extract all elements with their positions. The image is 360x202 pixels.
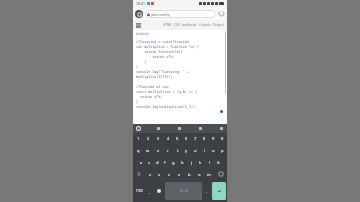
- button[interactable]: 9: [209, 133, 218, 144]
- button[interactable]: u: [191, 144, 200, 156]
- button[interactable]: 1: [133, 133, 143, 144]
- staticText: b: [188, 172, 191, 177]
- button[interactable]: Enter: [212, 182, 226, 200]
- staticText: ES - ES: [180, 189, 188, 193]
- button[interactable]: Space: [165, 182, 202, 200]
- staticText: 8: [203, 136, 206, 141]
- button[interactable]: g: [169, 156, 178, 168]
- button[interactable]: 0: [218, 133, 227, 144]
- button[interactable]: jsbin.com/q: [147, 10, 214, 18]
- button[interactable]: 7: [191, 133, 200, 144]
- staticText: Console: [199, 23, 211, 27]
- button[interactable]: Account: [135, 10, 143, 18]
- staticText: const multiplicar = (a,b) => {: [136, 89, 198, 94]
- button[interactable]: Console: [199, 23, 211, 27]
- button[interactable]: x: [154, 168, 164, 180]
- button[interactable]: .: [203, 180, 211, 202]
- staticText: ñ: [217, 160, 220, 165]
- button[interactable]: 8: [200, 133, 209, 144]
- button[interactable]: Emoji: [154, 180, 164, 202]
- staticText: o: [212, 148, 215, 153]
- staticText: }: [136, 59, 147, 64]
- button[interactable]: Output: [213, 23, 224, 27]
- staticText: y: [185, 148, 188, 153]
- staticText: d: [156, 160, 159, 165]
- button[interactable]: 4: [163, 133, 173, 144]
- button[interactable]: s: [145, 156, 153, 168]
- staticText: s: [148, 160, 150, 165]
- button[interactable]: k: [196, 156, 205, 168]
- button[interactable]: CSS: [174, 23, 180, 27]
- button[interactable]: Stickers: [156, 126, 161, 131]
- staticText: var multiplica = function (a) {: [136, 44, 200, 49]
- button[interactable]: ?123: [133, 180, 146, 202]
- staticText: JavaScript: [182, 23, 197, 27]
- staticText: 2: [147, 136, 150, 141]
- staticText: p: [221, 148, 224, 153]
- button[interactable]: Shift: [133, 168, 145, 180]
- staticText: Output: [213, 23, 224, 27]
- button[interactable]: q: [133, 144, 143, 156]
- staticText: JavaScript: [136, 32, 149, 36]
- staticText: 3: [157, 136, 160, 141]
- button[interactable]: Google: [136, 126, 141, 131]
- staticText: 4: [167, 136, 170, 141]
- button[interactable]: d: [153, 156, 161, 168]
- staticText: v: [178, 172, 181, 177]
- staticText: n: [198, 172, 201, 177]
- button[interactable]: ñ: [214, 156, 223, 168]
- button[interactable]: w: [143, 144, 153, 156]
- button[interactable]: a: [137, 156, 145, 168]
- staticText: j: [191, 160, 193, 165]
- button[interactable]: l: [205, 156, 214, 168]
- button[interactable]: 5: [173, 133, 182, 144]
- button[interactable]: f: [161, 156, 169, 168]
- staticText: q: [137, 148, 140, 153]
- button[interactable]: i: [200, 144, 209, 156]
- staticText: f: [164, 160, 166, 165]
- staticText: 6: [185, 136, 188, 141]
- staticText: //Currying o currificación: [136, 39, 189, 44]
- button[interactable]: 2: [143, 133, 153, 144]
- button[interactable]: Backspace: [214, 168, 227, 180]
- staticText: .: [206, 189, 208, 194]
- button[interactable]: GIF: [177, 126, 182, 131]
- button[interactable]: r: [163, 144, 173, 156]
- staticText: m: [207, 172, 211, 177]
- button[interactable]: JS Bin menu: [135, 22, 141, 28]
- button[interactable]: t: [173, 144, 182, 156]
- button[interactable]: o: [209, 144, 218, 156]
- staticText: jsbin.com/q: [151, 12, 170, 17]
- button[interactable]: Voice: [219, 126, 224, 131]
- button[interactable]: 6: [182, 133, 191, 144]
- button[interactable]: c: [164, 168, 174, 180]
- button[interactable]: v: [174, 168, 184, 180]
- staticText: ?123: [136, 189, 143, 193]
- button[interactable]: z: [145, 168, 154, 180]
- staticText: u: [194, 148, 197, 153]
- button[interactable]: Clipboard: [198, 126, 203, 131]
- button[interactable]: JavaScript: [182, 23, 197, 27]
- staticText: t: [177, 148, 179, 153]
- button[interactable]: n: [194, 168, 204, 180]
- button[interactable]: HTML: [163, 23, 172, 27]
- button[interactable]: 3: [153, 133, 163, 144]
- button[interactable]: b: [184, 168, 194, 180]
- button[interactable]: y: [182, 144, 191, 156]
- staticText: k: [199, 160, 202, 165]
- button[interactable]: j: [187, 156, 196, 168]
- button[interactable]: Reload: [218, 10, 225, 17]
- staticText: g: [172, 160, 175, 165]
- staticText: e: [157, 148, 160, 153]
- staticText: a: [140, 160, 143, 165]
- button[interactable]: p: [218, 144, 227, 156]
- staticText: console.log("Currying: " +: [136, 69, 189, 74]
- staticText: }: [136, 64, 139, 69]
- staticText: 7: [194, 136, 197, 141]
- staticText: return a*b;: [136, 94, 163, 99]
- button[interactable]: ,: [146, 180, 154, 202]
- button[interactable]: e: [153, 144, 163, 156]
- button[interactable]: m: [204, 168, 214, 180]
- staticText: multiplica(3)(5));: [136, 74, 173, 79]
- button[interactable]: h: [178, 156, 187, 168]
